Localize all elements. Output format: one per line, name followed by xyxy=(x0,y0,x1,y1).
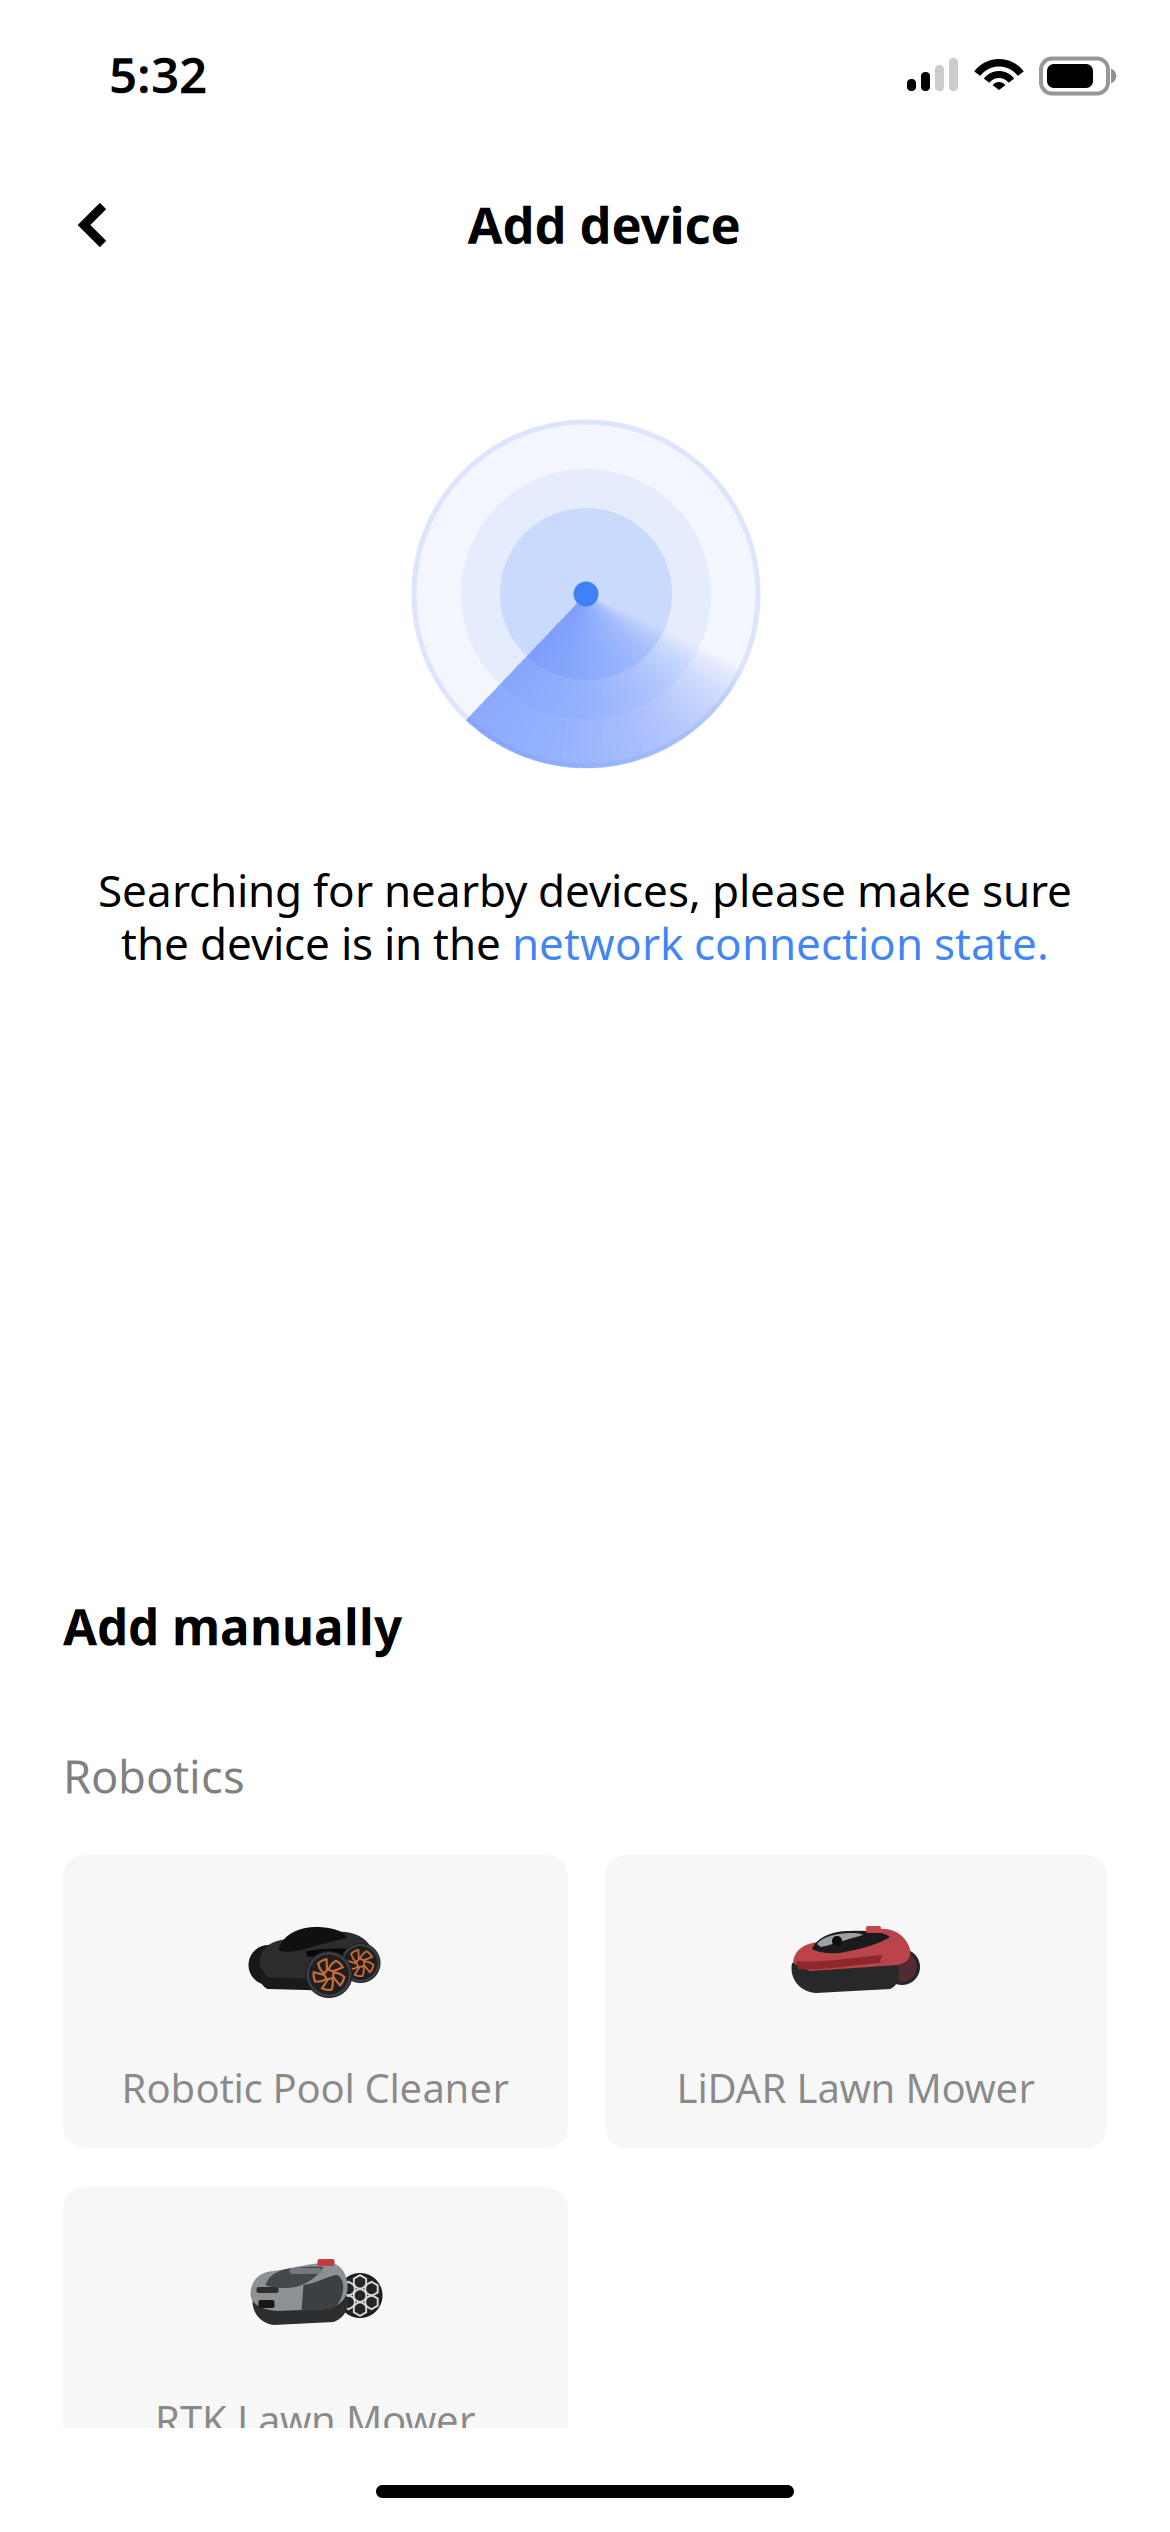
staticText: Add manually xyxy=(63,1593,402,1659)
button[interactable]: Robotic Pool Cleaner xyxy=(63,1855,568,2148)
staticText: LiDAR Lawn Mower xyxy=(676,2061,1035,2114)
staticText: Searching for nearby devices, please mak… xyxy=(98,861,1072,919)
staticText: 5:32 xyxy=(109,41,207,107)
button[interactable]: RTK Lawn Mower xyxy=(63,2187,568,2480)
button[interactable]: LiDAR Lawn Mower xyxy=(605,1855,1107,2148)
staticText: the device is in the xyxy=(121,914,512,972)
staticText: RTK Lawn Mower xyxy=(155,2393,476,2446)
staticText: Robotic Pool Cleaner xyxy=(121,2061,509,2114)
staticText: Add device xyxy=(467,190,740,258)
button[interactable]: Back xyxy=(0,178,144,270)
staticText: Robotics xyxy=(63,1746,245,1806)
staticText: network connection state. xyxy=(512,914,1049,972)
button[interactable]: network connection state. xyxy=(512,914,1049,972)
